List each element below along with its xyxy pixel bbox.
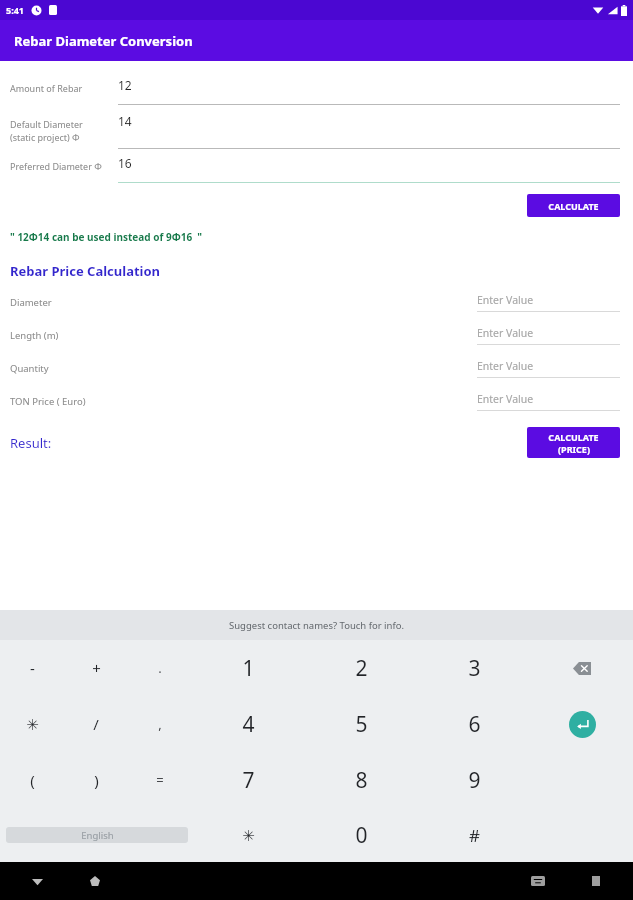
staticText: 5:41 [6,4,24,16]
button[interactable]: English [6,827,188,843]
staticText: 0 [355,821,368,850]
button[interactable]: / [64,696,128,752]
staticText: Result: [10,434,52,452]
button[interactable]: Quantity [0,359,633,381]
staticText: Diameter [10,296,52,309]
staticText: 6 [468,710,481,739]
staticText: 3 [468,654,481,683]
button[interactable]: 7 [192,752,305,808]
staticText: (PRICE) [558,443,590,455]
button[interactable]: CALCULATE [527,194,620,217]
staticText: 2 [355,654,368,683]
staticText: 14 [118,113,132,129]
button[interactable]: - [0,640,64,696]
button[interactable]: CALCULATE [527,427,620,458]
button[interactable]: Suggest contact names? Touch for info. [0,610,633,640]
staticText: , [158,715,162,733]
staticText: ) [94,770,99,790]
staticText: 1 [242,654,255,683]
button[interactable]: ✳ [0,696,64,752]
button[interactable]: Amount of Rebar [0,77,633,105]
staticText: Preferred Diameter Φ [10,160,102,172]
staticText: CALCULATE [548,431,599,443]
staticText: (static project) Φ [10,131,80,143]
staticText: Quantity [10,362,49,375]
staticText: ✳ [26,716,39,733]
button[interactable]: ✳ [192,808,305,862]
staticText: + [92,658,101,678]
staticText: Enter Value [477,359,534,373]
staticText: 5 [355,710,368,739]
button[interactable]: Diameter [0,293,633,315]
staticText: TON Price ( Euro) [10,395,86,408]
button[interactable]: Recent apps [585,870,607,892]
button[interactable]: Preferred Diameter Φ [0,155,633,183]
staticText: 9 [468,766,481,795]
staticText: . [158,659,162,677]
staticText: = [156,771,164,789]
button[interactable]: Backspace [531,640,633,696]
staticText: Suggest contact names? Touch for info. [229,619,404,632]
button[interactable]: Home [84,870,106,892]
button[interactable]: Back [26,870,48,892]
button[interactable]: TON Price ( Euro) [0,392,633,414]
button[interactable]: Enter [531,696,633,752]
staticText: - [30,658,35,678]
staticText: English [81,829,114,842]
button[interactable]: = [128,752,192,808]
button[interactable]: Length (m) [0,326,633,348]
staticText: 4 [242,710,255,739]
staticText: ( [30,770,35,790]
button[interactable]: + [64,640,128,696]
button[interactable]: 0 [305,808,418,862]
button[interactable]: 2 [305,640,418,696]
staticText: ✳ [242,827,255,844]
staticText: # [469,824,480,847]
staticText: 8 [355,766,368,795]
button[interactable]: 8 [305,752,418,808]
staticText: Length (m) [10,329,59,342]
button[interactable]: 5 [305,696,418,752]
staticText: CALCULATE [548,200,599,212]
button[interactable]: 9 [418,752,531,808]
button[interactable]: ) [64,752,128,808]
staticText: Rebar Price Calculation [10,262,161,280]
button[interactable]: ( [0,752,64,808]
staticText: 12 [118,77,132,93]
staticText: Amount of Rebar [10,82,83,94]
staticText: " 12Φ14 can be used instead of 9Φ16 " [10,230,203,244]
button[interactable]: , [128,696,192,752]
staticText: 16 [118,155,132,171]
button[interactable]: 6 [418,696,531,752]
staticText: Rebar Diameter Conversion [14,32,193,50]
button[interactable]: # [418,808,531,862]
staticText: Enter Value [477,326,534,340]
staticText: 7 [242,766,255,795]
staticText: Enter Value [477,392,534,406]
button[interactable]: 3 [418,640,531,696]
button[interactable]: 1 [192,640,305,696]
staticText: Enter Value [477,293,534,307]
button[interactable]: 4 [192,696,305,752]
staticText: Default Diameter [10,118,83,130]
staticText: / [93,714,99,734]
button[interactable]: Default Diameter [0,113,633,149]
button[interactable]: Keyboard [527,870,549,892]
